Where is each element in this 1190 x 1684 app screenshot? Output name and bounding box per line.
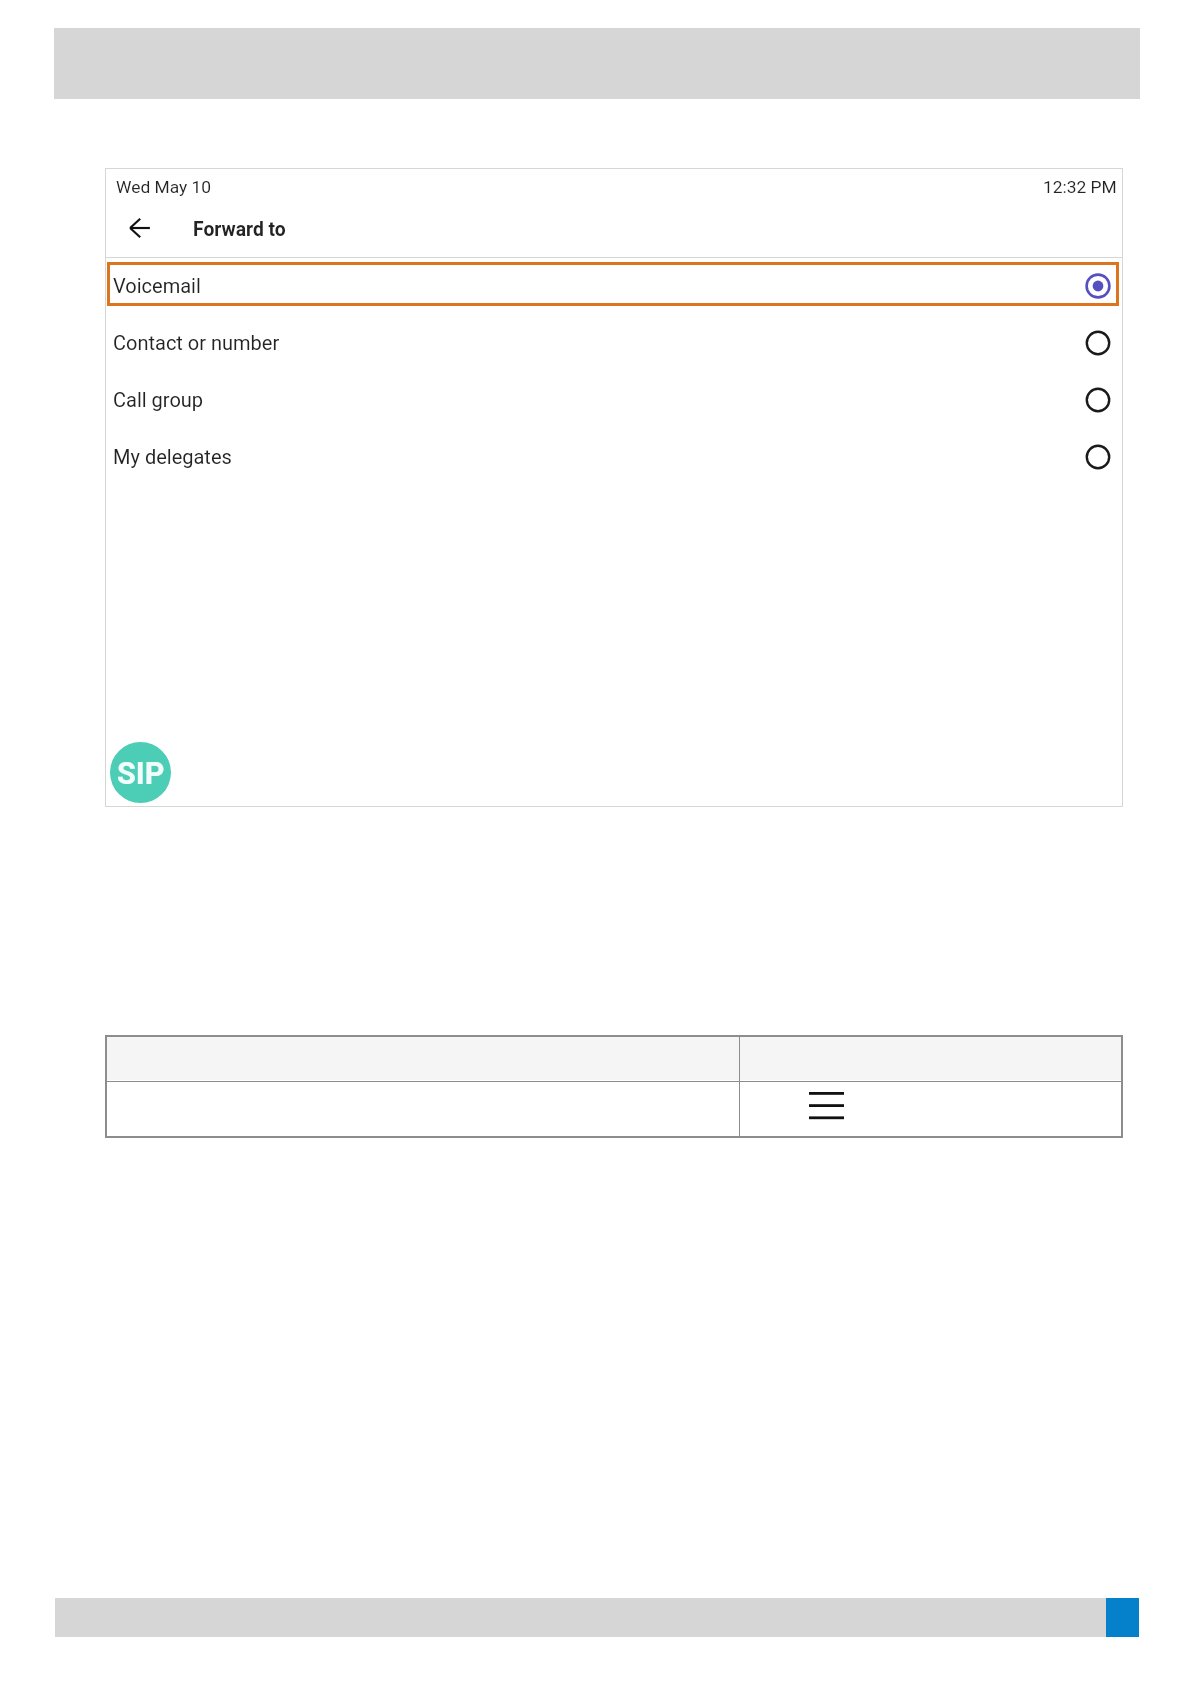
button[interactable]: SIP [110, 742, 171, 803]
staticText: Voicemail [113, 274, 201, 297]
button[interactable]: Contact or number [105, 314, 1123, 371]
button[interactable]: Voicemail [105, 257, 1123, 314]
button[interactable]: Menu [809, 1092, 847, 1120]
staticText: Wed May 10 [116, 177, 212, 197]
button[interactable]: My delegates [105, 428, 1123, 485]
staticText: Call group [113, 388, 204, 411]
staticText: Forward to [193, 218, 286, 241]
button[interactable]: Back [116, 204, 164, 252]
staticText: 12:32 PM [1043, 177, 1117, 197]
staticText: Contact or number [113, 331, 280, 354]
staticText: SIP [117, 756, 165, 792]
button[interactable]: Call group [105, 371, 1123, 428]
staticText: My delegates [113, 445, 232, 468]
